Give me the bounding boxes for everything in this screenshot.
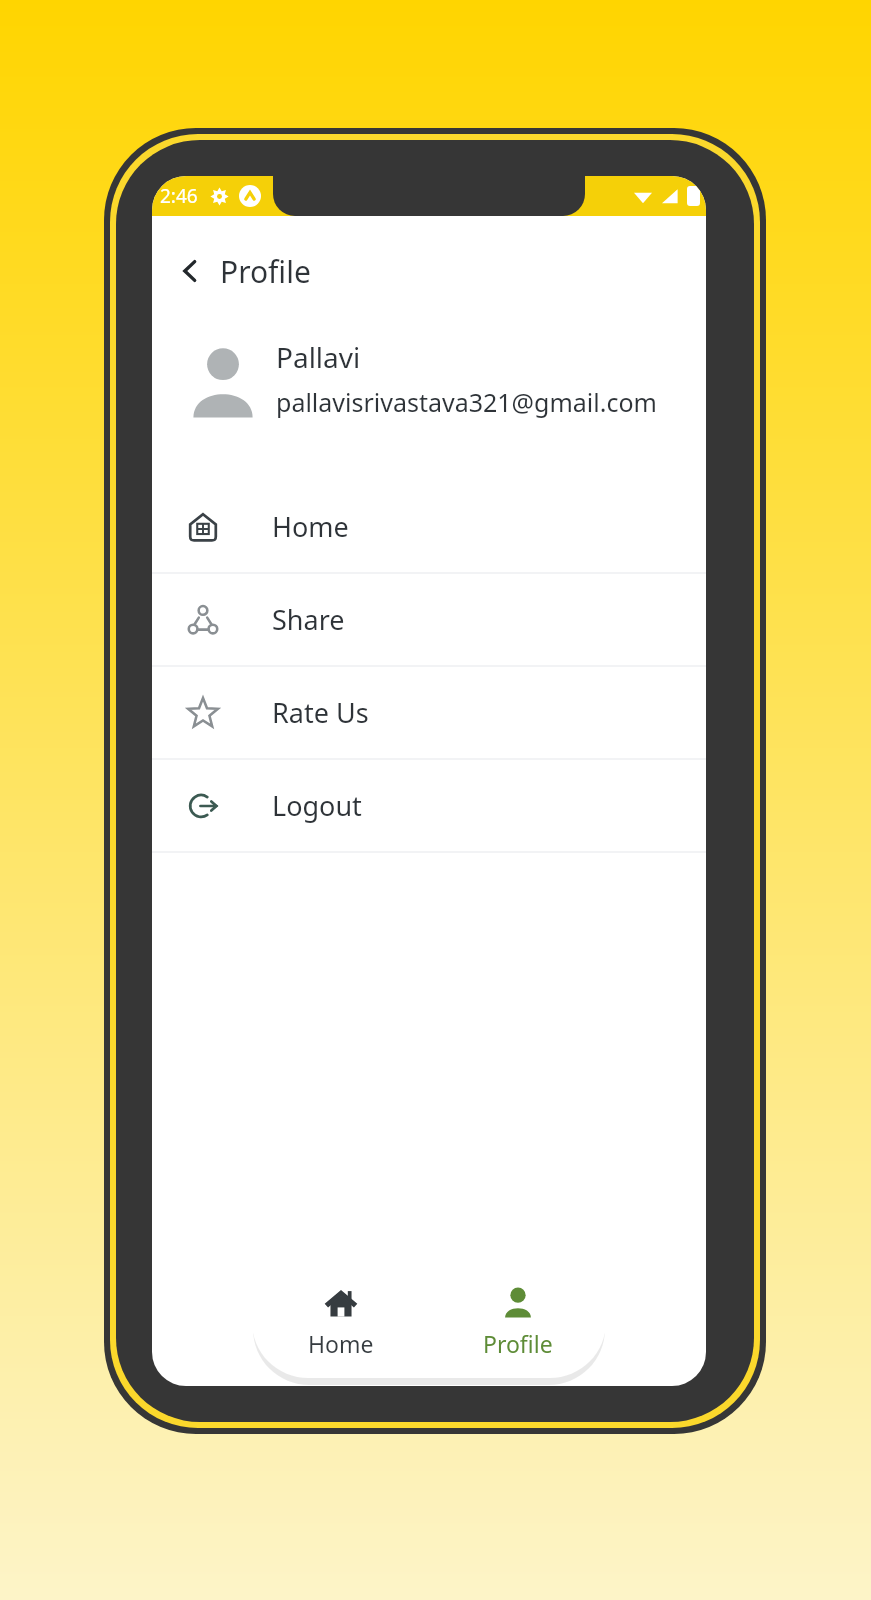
staticText: Rate Us [272,694,369,731]
button[interactable]: Profile [429,1266,606,1378]
button[interactable]: Share [152,574,706,665]
staticText: Profile [483,1328,553,1359]
staticText: Profile [220,251,311,292]
staticText: Pallavi [276,338,361,376]
button[interactable]: Home [252,1266,429,1378]
staticText: Home [308,1328,374,1359]
staticText: Share [272,601,345,638]
staticText: Logout [272,787,362,824]
staticText: 2:46 [160,183,198,209]
button[interactable]: Back [166,247,214,295]
button[interactable]: Home [152,481,706,572]
staticText: Home [272,508,349,545]
staticText: pallavisrivastava321@gmail.com [276,385,657,419]
button[interactable]: Logout [152,760,706,851]
button[interactable]: Pallavi [152,328,706,429]
button[interactable]: Rate Us [152,667,706,758]
